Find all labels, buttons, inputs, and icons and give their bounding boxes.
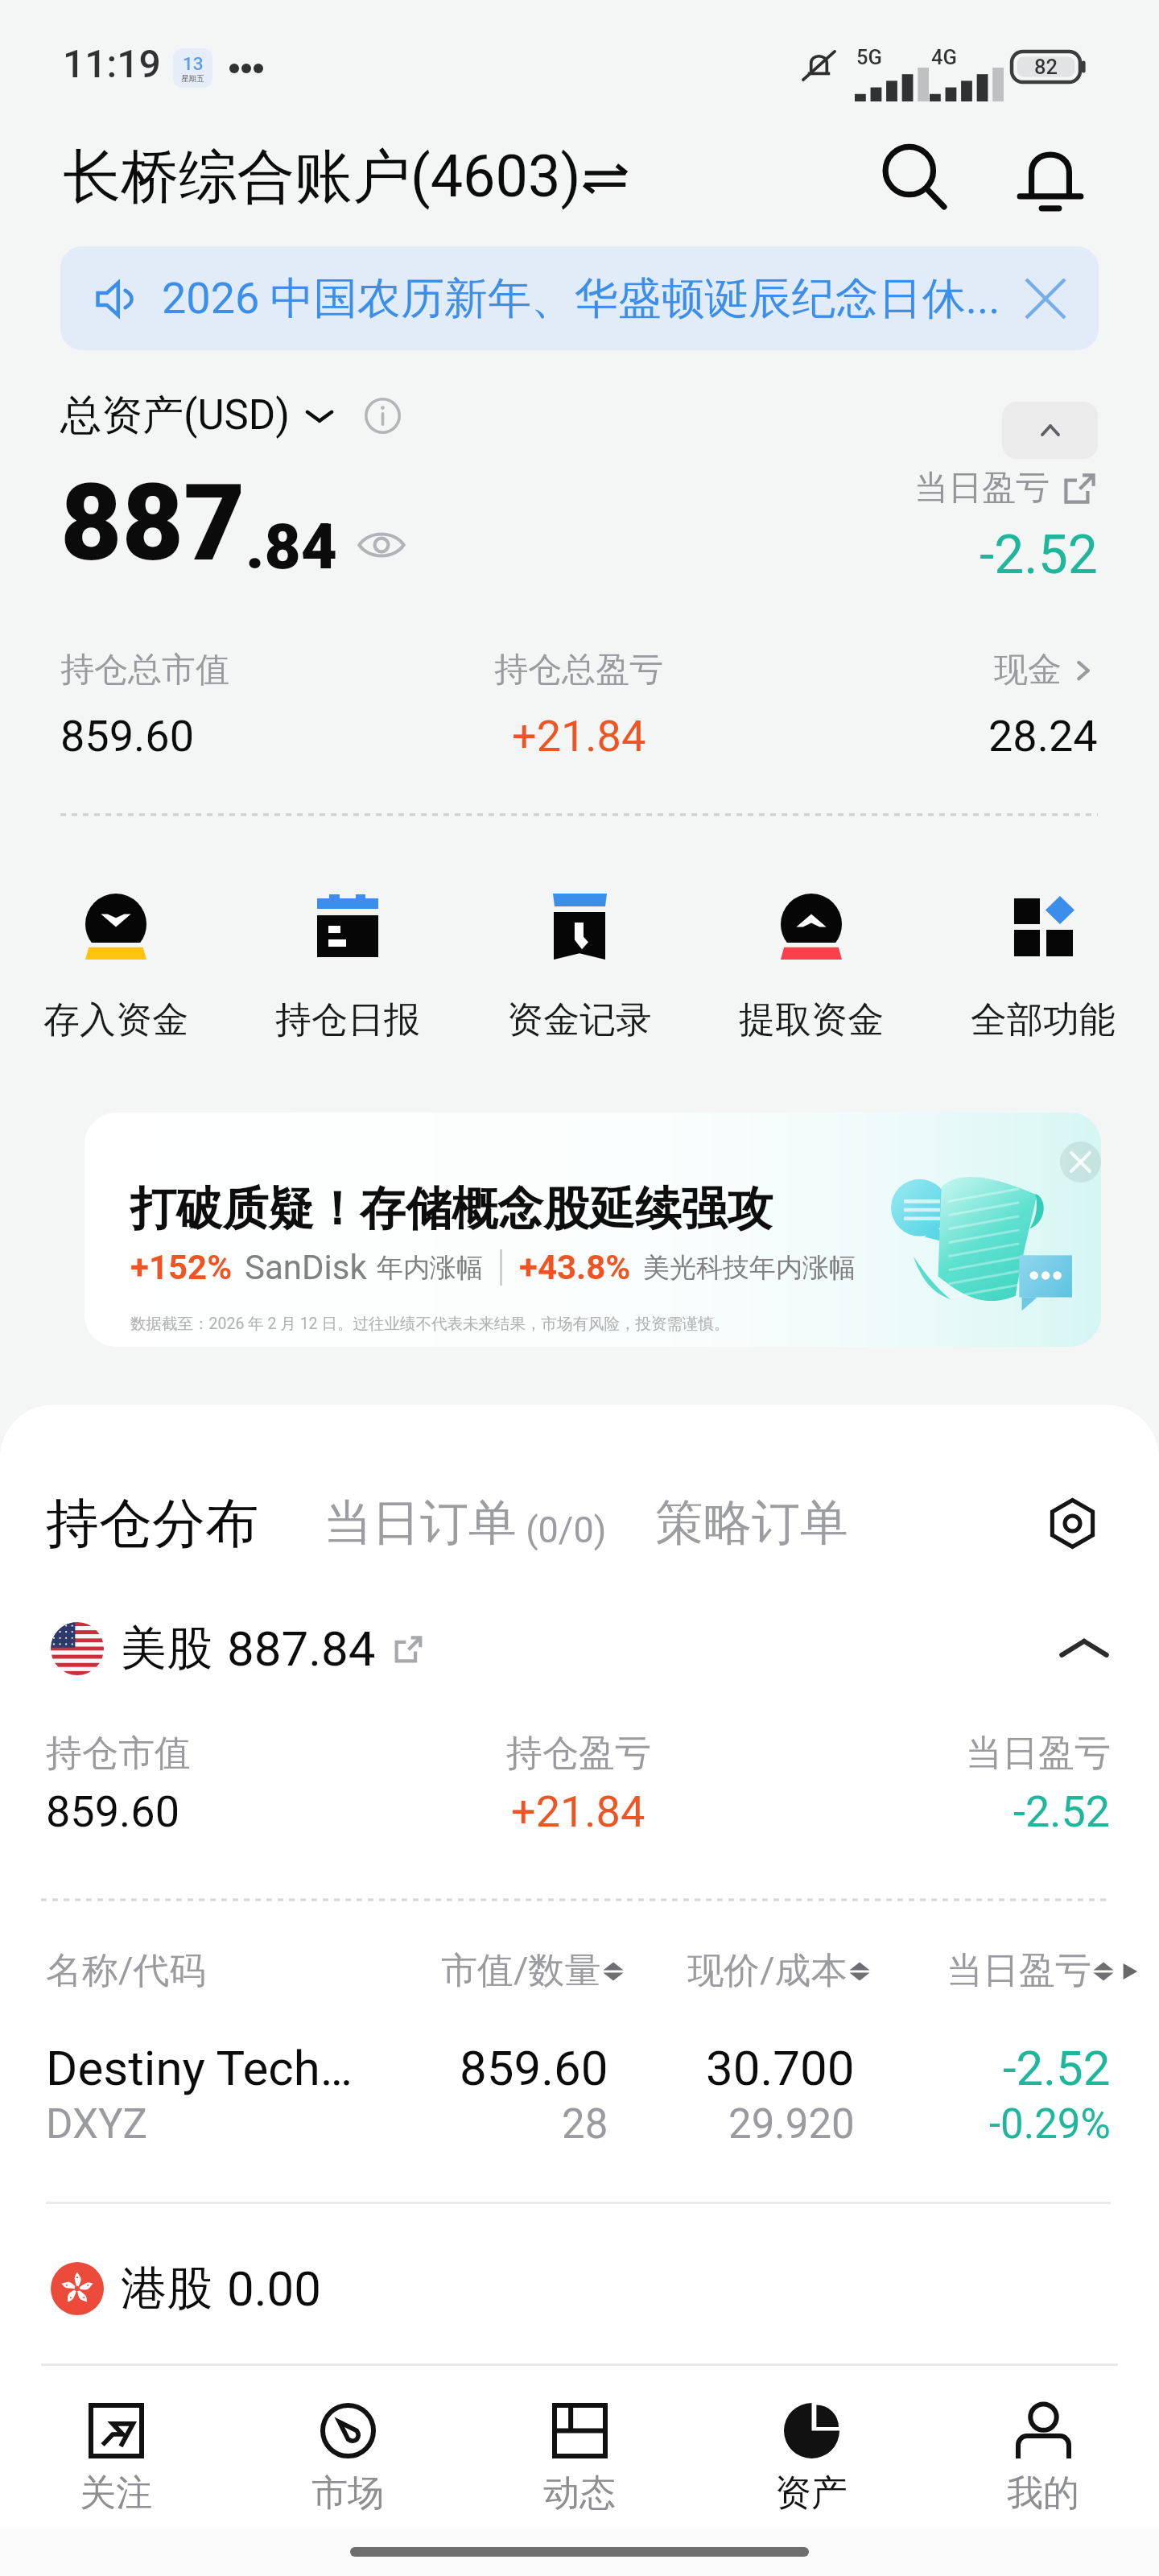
staticText: 打破质疑！存储概念股延续强攻 <box>130 1180 773 1238</box>
staticText: 当日盈亏 <box>966 1731 1111 1777</box>
staticText: 港股 <box>121 2260 212 2318</box>
staticText: 2026 中国农历新年、华盛顿诞辰纪念日休... <box>162 271 1000 326</box>
staticText: 859.60 <box>60 711 194 762</box>
button[interactable]: Settings <box>1029 1480 1116 1567</box>
staticText: 29.920 <box>728 2100 855 2149</box>
staticText: .84 <box>245 510 338 584</box>
button[interactable]: 总资产(USD) <box>60 390 336 441</box>
button[interactable]: 打破质疑！存储概念股延续强攻 <box>85 1113 1101 1347</box>
button[interactable]: Collapse <box>1002 402 1098 459</box>
button[interactable]: 长桥综合账户(4603) <box>63 141 629 214</box>
button[interactable]: Close promotion <box>1060 1141 1101 1183</box>
button[interactable]: 我的 <box>927 2403 1159 2516</box>
staticText: 星期五 <box>181 74 204 84</box>
staticText: 动态 <box>543 2471 616 2516</box>
staticText: 持仓市值 <box>46 1731 191 1777</box>
button[interactable]: 提取资金 <box>695 894 927 1043</box>
staticText: 4G <box>931 45 957 69</box>
staticText: 887.84 <box>227 1620 376 1677</box>
staticText: 总资产(USD) <box>60 390 291 441</box>
staticText: 887 <box>60 461 245 586</box>
staticText: 持仓盈亏 <box>506 1731 651 1777</box>
button[interactable]: 2026 中国农历新年、华盛顿诞辰纪念日休... <box>60 246 1099 350</box>
button[interactable]: 持仓日报 <box>232 894 464 1043</box>
button[interactable]: 资产 <box>695 2403 927 2516</box>
staticText: 关注 <box>80 2471 152 2516</box>
button[interactable]: Search <box>860 122 971 233</box>
staticText: 市场 <box>311 2471 384 2516</box>
staticText: 市值/数量 <box>441 1948 601 1994</box>
staticText: Destiny Tech… <box>46 2040 353 2096</box>
staticText: 0.00 <box>227 2260 321 2317</box>
staticText: 当日盈亏 <box>914 467 1050 510</box>
staticText: 859.60 <box>46 1786 179 1837</box>
staticText: 美光科技年内涨幅 <box>643 1251 856 1285</box>
button[interactable]: 美股 <box>0 1620 1159 1678</box>
staticText: +21.84 <box>511 1786 645 1837</box>
staticText: 年内涨幅 <box>377 1251 483 1285</box>
button[interactable]: Info <box>356 389 409 442</box>
staticText: 长桥综合账户(4603) <box>63 141 581 214</box>
staticText: 13 <box>183 53 204 74</box>
staticText: 持仓日报 <box>275 997 420 1043</box>
staticText: 持仓总盈亏 <box>494 649 663 691</box>
staticText: 859.60 <box>460 2040 608 2096</box>
staticText: 当日订单 <box>324 1492 517 1554</box>
staticText: -2.52 <box>980 524 1098 586</box>
staticText: 数据截至：2026 年 2 月 12 日。过往业绩不代表未来结果，市场有风险，投… <box>130 1314 730 1334</box>
staticText: 30.700 <box>706 2040 855 2096</box>
staticText: 全部功能 <box>971 997 1116 1043</box>
button[interactable]: 动态 <box>464 2403 695 2516</box>
staticText: 82 <box>1034 55 1058 79</box>
staticText: (0/0) <box>517 1509 607 1551</box>
staticText: +21.84 <box>512 711 646 762</box>
staticText: 现金 <box>994 649 1062 691</box>
button[interactable]: Destiny Tech… <box>0 2040 1159 2149</box>
staticText: +43.8% <box>519 1248 631 1287</box>
button[interactable]: 关注 <box>0 2403 232 2516</box>
staticText: 持仓总市值 <box>60 649 229 691</box>
button[interactable]: 全部功能 <box>927 894 1159 1043</box>
staticText: 名称/代码 <box>46 1948 408 1994</box>
staticText: 美股 <box>121 1620 212 1678</box>
button[interactable]: 资金记录 <box>464 894 695 1043</box>
button[interactable]: Close notice <box>1009 262 1082 335</box>
staticText: -2.52 <box>1013 1786 1111 1837</box>
button[interactable]: Toggle balance visibility <box>353 516 410 574</box>
button[interactable]: 当日盈亏 <box>914 467 1098 586</box>
button[interactable]: 现金 <box>994 649 1098 691</box>
staticText: 资金记录 <box>507 997 652 1043</box>
button[interactable]: 持仓分布 <box>46 1490 258 1557</box>
staticText: -2.52 <box>1003 2040 1111 2096</box>
button[interactable]: Notifications <box>995 122 1106 233</box>
staticText: -0.29% <box>989 2100 1111 2149</box>
staticText: 资产 <box>775 2471 848 2516</box>
button[interactable]: 当日订单 <box>324 1492 607 1554</box>
button[interactable]: 港股 <box>0 2260 1159 2318</box>
button[interactable]: 市场 <box>232 2403 464 2516</box>
staticText: 11:19 <box>63 41 161 86</box>
staticText: 我的 <box>1007 2471 1079 2516</box>
staticText: DXYZ <box>46 2100 148 2149</box>
staticText: 28.24 <box>988 711 1098 762</box>
staticText: 28 <box>562 2100 608 2149</box>
button[interactable]: 存入资金 <box>0 894 232 1043</box>
staticText: SanDisk <box>245 1248 367 1287</box>
staticText: 5G <box>856 45 882 69</box>
button[interactable]: 策略订单 <box>655 1492 848 1554</box>
staticText: 现价/成本 <box>687 1948 848 1994</box>
staticText: 当日盈亏 <box>947 1948 1091 1994</box>
staticText: 提取资金 <box>739 997 884 1043</box>
staticText: 存入资金 <box>43 997 188 1043</box>
staticText: +152% <box>130 1248 233 1287</box>
